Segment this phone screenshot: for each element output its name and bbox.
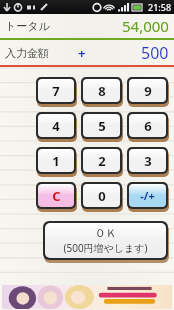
staticText: ＯＫ (95, 226, 117, 240)
staticText: 3 (144, 152, 152, 170)
staticText: 6 (144, 117, 152, 135)
staticText: 2 (98, 152, 106, 170)
staticText: 0 (98, 187, 106, 205)
button[interactable]: -/+ (127, 182, 168, 212)
staticText: + (78, 44, 86, 62)
staticText: 54,000 (122, 16, 169, 36)
staticText: 8 (98, 82, 106, 100)
button[interactable]: 1 (36, 147, 76, 177)
staticText: C (52, 187, 61, 205)
button[interactable]: 2 (81, 147, 122, 177)
staticText: 7 (52, 82, 60, 100)
button[interactable]: 8 (81, 77, 122, 107)
staticText: 500 (141, 42, 169, 64)
button[interactable]: 5 (81, 112, 122, 142)
staticText: 4 (52, 117, 60, 135)
button[interactable]: C (36, 182, 76, 212)
button[interactable]: ＯＫ (43, 221, 168, 263)
staticText: 5 (98, 117, 106, 135)
staticText: 9 (144, 82, 152, 100)
staticText: 21:58 (148, 1, 172, 13)
staticText: トータル (5, 19, 50, 33)
button[interactable]: 7 (36, 77, 76, 107)
staticText: (500円増やします) (63, 241, 148, 255)
button[interactable]: 3 (127, 147, 168, 177)
staticText: 入力金額 (5, 46, 49, 60)
button[interactable]: 9 (127, 77, 168, 107)
staticText: 1 (52, 152, 60, 170)
button[interactable]: Advertisement (2, 285, 172, 309)
button[interactable]: 4 (36, 112, 76, 142)
button[interactable]: 0 (81, 182, 122, 212)
staticText: -/+ (140, 188, 155, 203)
button[interactable]: 6 (127, 112, 168, 142)
